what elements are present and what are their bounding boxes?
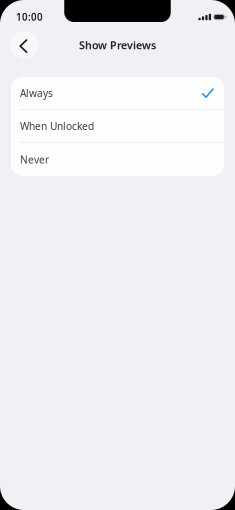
staticText: Never (20, 153, 49, 166)
button[interactable]: Never (11, 143, 224, 176)
staticText: Always (20, 86, 53, 100)
staticText: Show Previews (79, 38, 156, 52)
staticText: 10:00 (16, 10, 43, 24)
button[interactable]: Always (11, 77, 224, 110)
staticText: When Unlocked (20, 119, 94, 133)
button[interactable]: Back (10, 31, 38, 59)
button[interactable]: When Unlocked (11, 110, 224, 143)
